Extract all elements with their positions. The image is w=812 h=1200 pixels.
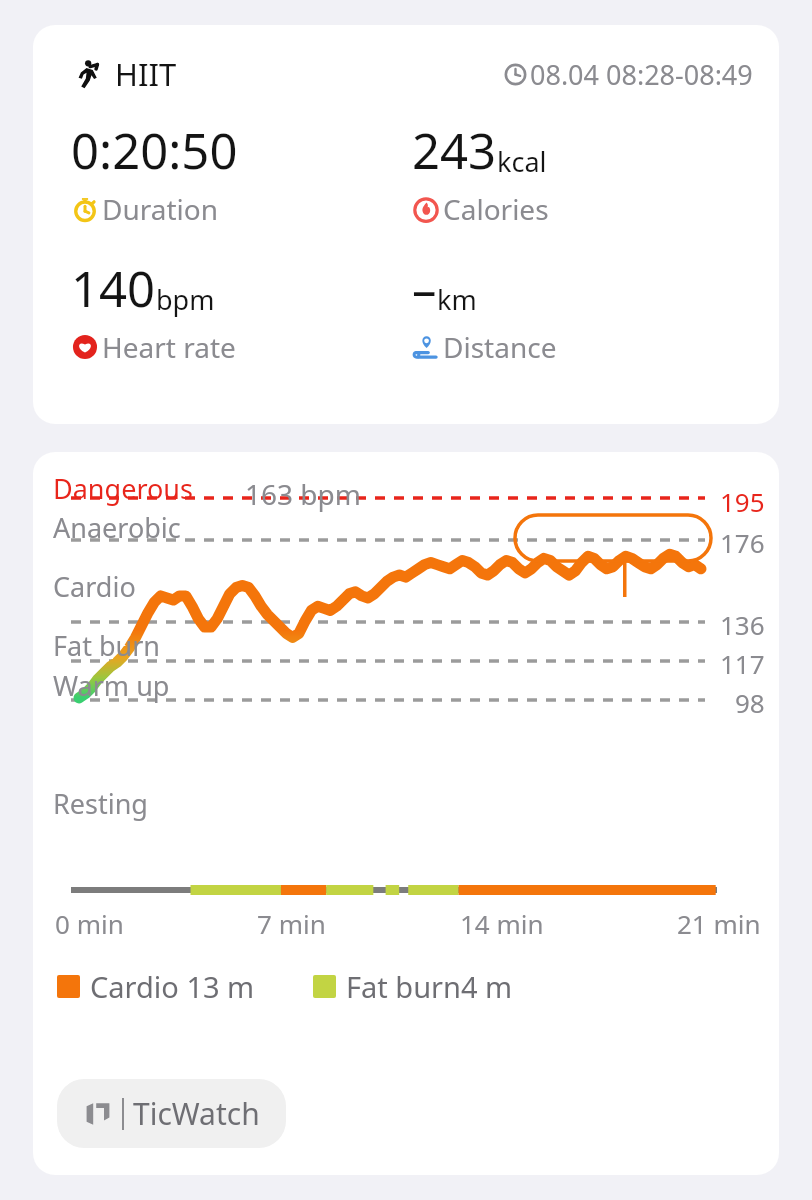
staticText: 0:20:50 [71,117,238,184]
button[interactable]: Dangerous [33,452,779,1175]
staticText: 136 [720,607,765,642]
button[interactable]: TicWatch logo [57,1079,286,1148]
staticText: 98 [735,685,765,720]
staticText: Cardio [53,568,136,605]
staticText: Fat burn4 m [346,967,513,1006]
staticText: bpm [156,281,215,318]
other: TicWatch logo [83,1099,113,1129]
staticText: Resting [53,785,148,822]
staticText: 7 min [257,906,326,941]
staticText: 08.04 08:28-08:49 [530,56,753,93]
staticText: 243 [412,117,497,184]
staticText: HIIT [115,53,177,95]
staticText: 117 [720,646,765,681]
button[interactable]: Fat burn4 m [313,967,513,1006]
staticText: km [437,281,477,318]
staticText: 0 min [55,906,124,941]
staticText: kcal [497,143,547,180]
staticText: Heart rate [102,328,236,366]
staticText: Cardio 13 m [90,967,255,1006]
staticText: 176 [720,525,765,560]
staticText: Duration [102,190,219,228]
button[interactable]: HIIT [33,25,779,424]
staticText: 163 bpm [245,475,361,513]
button[interactable]: 140 [71,255,412,366]
staticText: 195 [720,484,765,519]
staticText: 140 [71,255,156,322]
staticText: TicWatch [133,1093,260,1134]
staticText: 21 min [677,906,761,941]
button[interactable]: – [412,255,753,366]
staticText: Dangerous [53,470,193,507]
staticText: – [412,255,437,322]
staticText: Calories [443,190,549,228]
button[interactable]: 0:20:50 [71,117,412,228]
staticText: Warm up [53,667,170,704]
staticText: 14 min [460,906,544,941]
button[interactable]: Cardio 13 m [57,967,255,1006]
staticText: Anaerobic [53,509,181,546]
button[interactable]: 243 [412,117,753,228]
staticText: Distance [443,328,557,366]
staticText: Fat burn [53,627,161,664]
